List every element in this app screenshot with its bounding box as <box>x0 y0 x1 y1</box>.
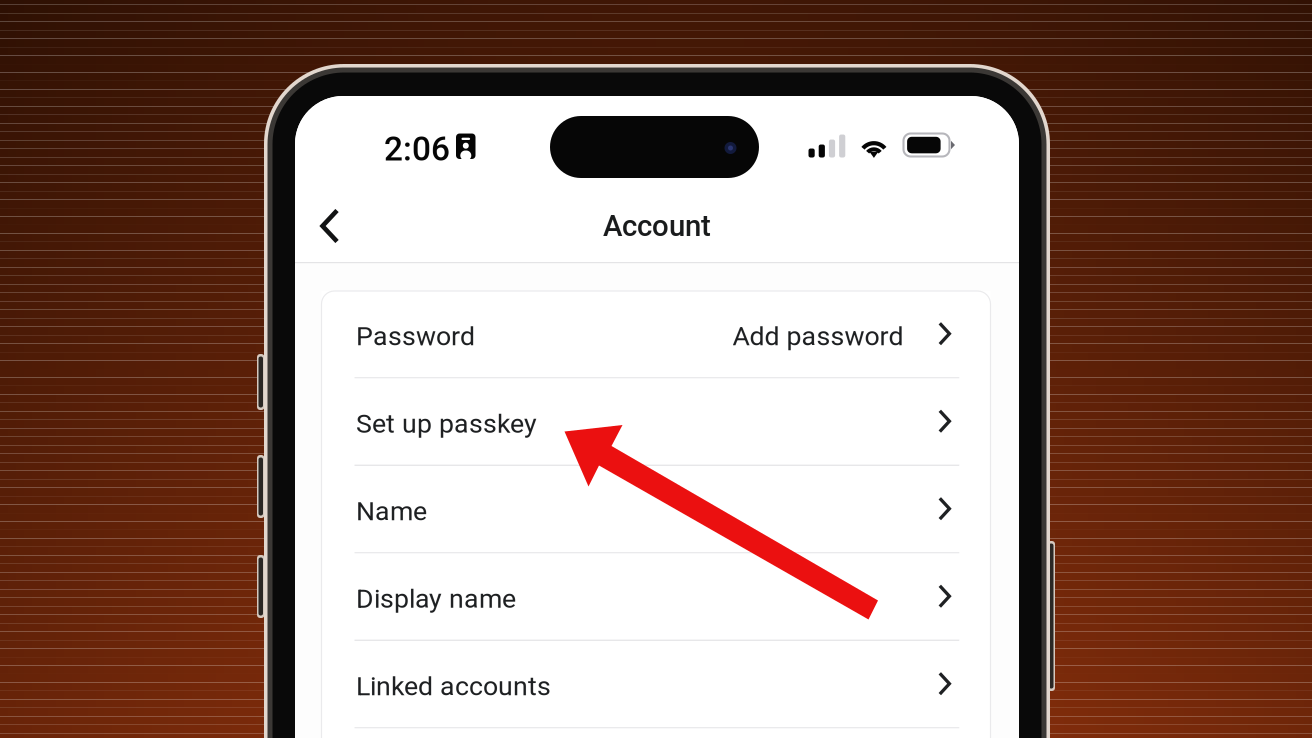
staticText: Password <box>356 320 475 352</box>
button[interactable]: Back <box>307 195 361 257</box>
staticText: Set up passkey <box>356 408 537 439</box>
button[interactable]: Linked accounts <box>321 641 990 727</box>
button[interactable]: Name <box>321 466 990 552</box>
staticText: 2:06 <box>384 129 450 169</box>
staticText: Name <box>356 495 427 527</box>
button[interactable]: Display name <box>321 553 990 640</box>
button[interactable]: Set up passkey <box>321 378 990 465</box>
staticText: Account <box>603 209 711 243</box>
staticText: Display name <box>356 583 516 614</box>
staticText: Linked accounts <box>356 670 551 702</box>
staticText: Add password <box>732 320 903 352</box>
button[interactable]: Password <box>321 291 990 377</box>
